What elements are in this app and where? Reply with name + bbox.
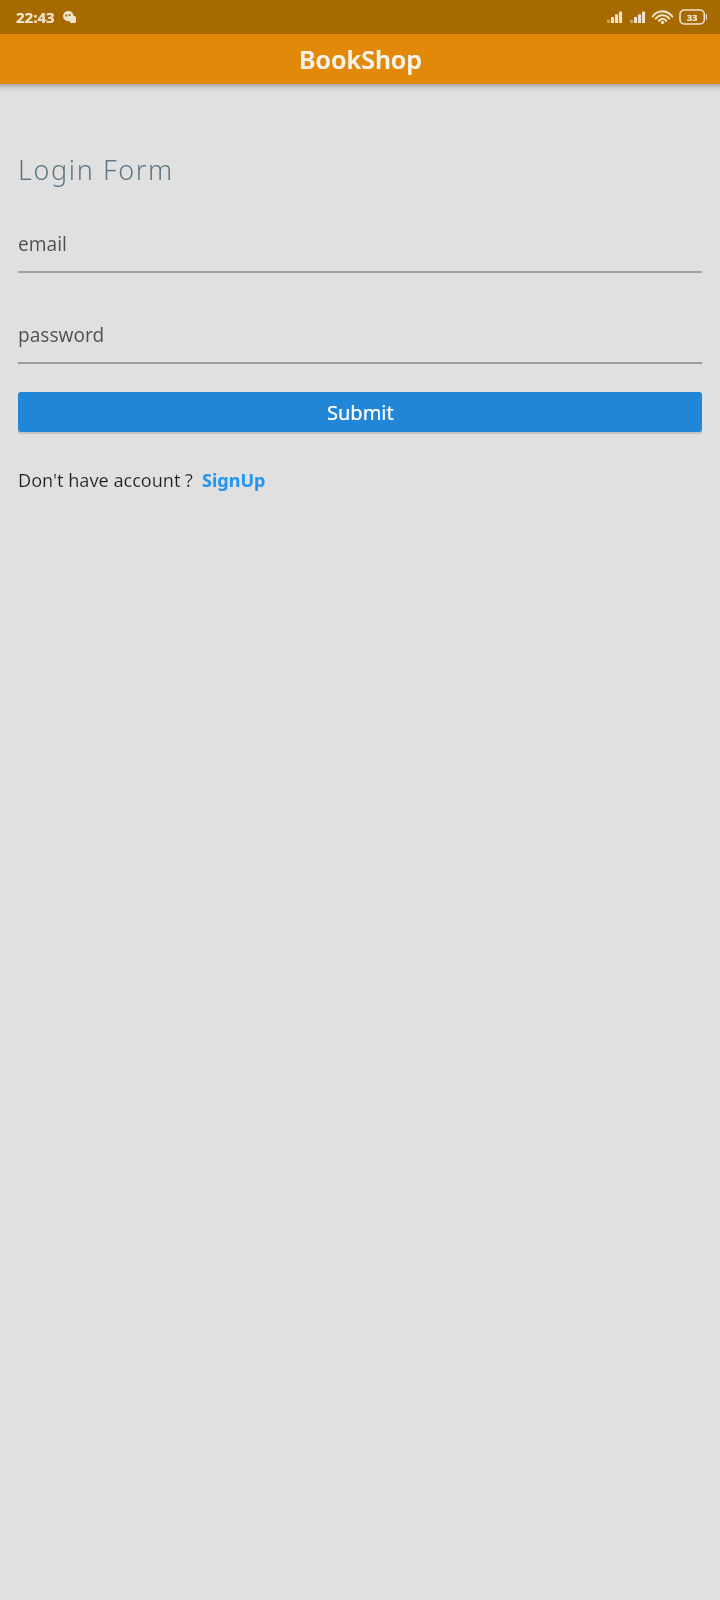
button[interactable]: email [18, 231, 702, 273]
staticText: Submit [327, 399, 394, 426]
staticText: 33 [687, 11, 698, 23]
staticText: password [18, 322, 105, 348]
staticText: 22:43 [16, 7, 55, 27]
staticText: email [18, 231, 67, 257]
staticText: Login Form [18, 151, 174, 188]
button[interactable]: password [18, 322, 702, 364]
button[interactable]: SignUp [202, 468, 266, 493]
staticText: BookShop [299, 42, 422, 76]
staticText: Don't have account ? [18, 468, 193, 493]
staticText: SignUp [202, 468, 266, 493]
button[interactable]: Submit [18, 392, 702, 432]
